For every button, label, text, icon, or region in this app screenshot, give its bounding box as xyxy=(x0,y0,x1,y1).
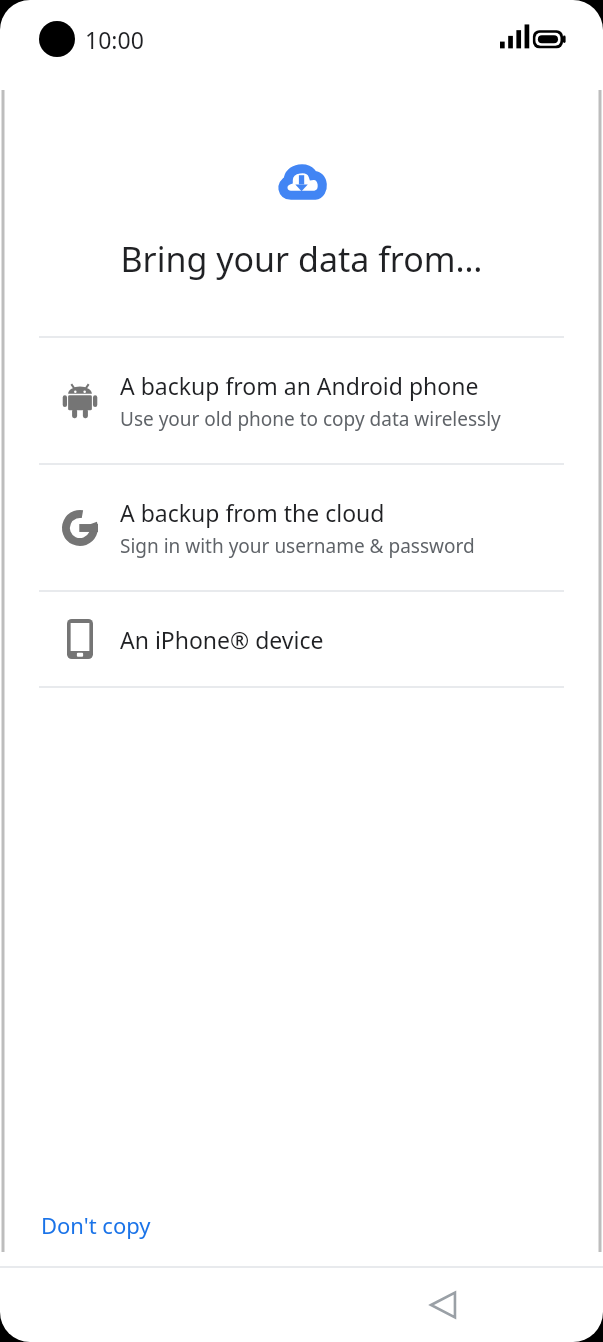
staticText: Use your old phone to copy data wireless… xyxy=(120,406,501,432)
button[interactable]: Don't copy xyxy=(39,1206,153,1244)
button[interactable]: An iPhone® device xyxy=(39,592,564,686)
button[interactable]: Back xyxy=(413,1275,473,1335)
button[interactable]: A backup from an Android phone xyxy=(39,338,564,463)
button[interactable]: A backup from the cloud xyxy=(39,465,564,590)
staticText: Sign in with your username & password xyxy=(120,533,475,559)
staticText: Don't copy xyxy=(41,1210,151,1240)
staticText: 10:00 xyxy=(85,24,144,55)
staticText: Bring your data from… xyxy=(0,236,603,282)
staticText: A backup from an Android phone xyxy=(120,370,479,401)
staticText: A backup from the cloud xyxy=(120,497,385,528)
staticText: An iPhone® device xyxy=(120,624,324,655)
